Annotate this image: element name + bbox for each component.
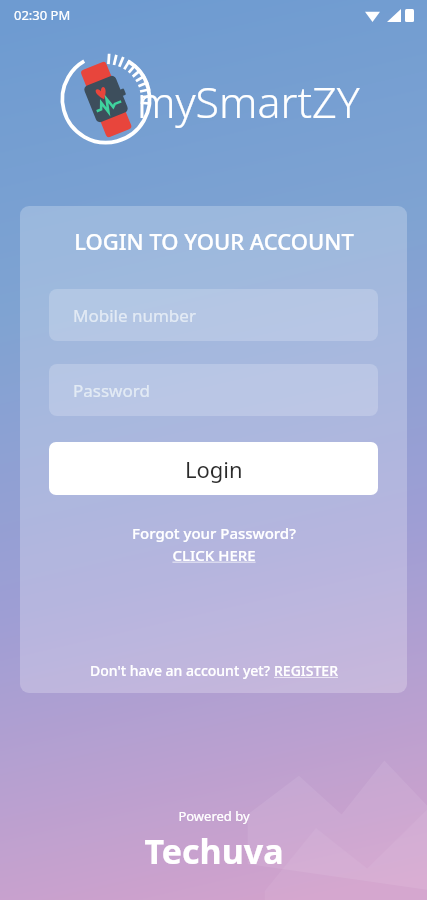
staticText: Forgot your Password?: [132, 523, 296, 543]
staticText: 02:30 PM: [14, 6, 71, 24]
staticText: Techuva: [144, 828, 284, 874]
staticText: Mobile number: [73, 304, 196, 327]
staticText: mySmartZY: [137, 72, 360, 131]
button[interactable]: Mobile number: [49, 289, 378, 341]
button[interactable]: Password: [49, 364, 378, 416]
staticText: Login: [185, 454, 243, 484]
staticText: CLICK HERE: [172, 545, 256, 565]
staticText: Powered by: [178, 807, 250, 825]
staticText: REGISTER: [274, 661, 338, 680]
staticText: Don't have an account yet?: [90, 661, 274, 680]
button[interactable]: Login: [49, 442, 378, 495]
button[interactable]: Don't have an account yet?: [80, 657, 348, 684]
staticText: LOGIN TO YOUR ACCOUNT: [74, 226, 354, 256]
staticText: Password: [73, 379, 150, 402]
button[interactable]: Forgot your Password?: [118, 521, 310, 567]
